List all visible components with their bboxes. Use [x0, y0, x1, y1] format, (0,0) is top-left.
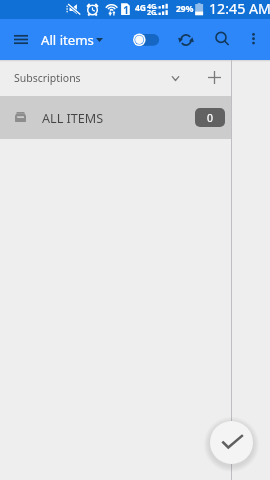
- staticText: 29%: [176, 3, 194, 15]
- staticText: 0: [207, 111, 214, 125]
- staticText: ALL ITEMS: [42, 110, 104, 127]
- button[interactable]: Add subscription: [202, 65, 227, 90]
- staticText: 4G: [147, 1, 157, 11]
- button[interactable]: Search: [209, 26, 236, 53]
- staticText: 12:45 AM: [209, 0, 270, 18]
- button[interactable]: Toggle unread only: [129, 27, 163, 52]
- button[interactable]: All items: [41, 19, 109, 60]
- button[interactable]: More options: [240, 26, 267, 53]
- button[interactable]: Collapse subscriptions: [163, 66, 188, 91]
- staticText: 2G: [147, 7, 157, 17]
- button[interactable]: ALL ITEMS: [0, 96, 231, 139]
- button[interactable]: Navigation menu: [7, 25, 35, 53]
- button[interactable]: Mark all as read: [210, 421, 253, 464]
- button[interactable]: Refresh: [172, 26, 199, 53]
- staticText: 4G: [135, 2, 147, 14]
- staticText: 1: [123, 3, 130, 17]
- staticText: All items: [41, 31, 94, 49]
- staticText: Subscriptions: [14, 71, 81, 85]
